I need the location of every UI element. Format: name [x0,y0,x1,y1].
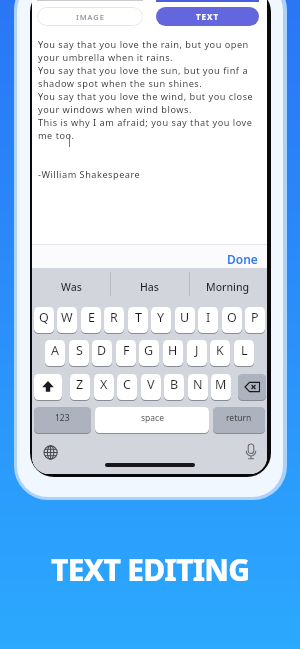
button[interactable]: space [95,407,209,434]
staticText: F [123,342,130,359]
staticText: U [180,309,190,326]
button[interactable]: V [141,374,161,401]
button[interactable]: U [175,307,195,334]
button[interactable]: W [57,307,77,334]
button[interactable]: O [222,307,242,334]
button[interactable]: Morning [189,272,267,302]
button[interactable]: K [210,340,230,367]
button[interactable]: E [81,307,101,334]
staticText: B [170,376,179,393]
button[interactable]: Done [227,251,258,267]
staticText: R [110,309,118,326]
staticText: Z [76,376,84,393]
staticText: Done [227,251,258,267]
button[interactable] [242,443,260,463]
staticText: Morning [206,280,250,294]
button[interactable] [238,374,266,401]
button[interactable]: D [92,340,112,367]
button[interactable]: Z [70,374,90,401]
button[interactable]: Q [34,307,54,334]
staticText: J [195,342,199,359]
button[interactable]: return [213,407,265,434]
staticText: TEXT EDITING [51,549,250,590]
staticText: D [97,342,107,359]
button[interactable]: J [187,340,207,367]
button[interactable]: M [211,374,231,401]
button[interactable]: X [94,374,114,401]
staticText: TEXT [196,11,220,22]
button[interactable]: TEXT [156,7,259,26]
button[interactable]: A [45,340,65,367]
staticText: K [216,342,224,359]
button[interactable]: I [198,307,218,334]
staticText: T [135,309,142,326]
button[interactable]: T [128,307,148,334]
staticText: G [144,342,154,359]
staticText: Was [61,280,82,294]
button[interactable]: IMAGE [37,7,143,26]
staticText: 123 [55,412,70,424]
staticText: IMAGE [76,12,105,22]
button[interactable]: B [164,374,184,401]
button[interactable]: S [69,340,89,367]
staticText: P [251,309,259,326]
staticText: A [51,342,59,359]
button[interactable]: 123 [34,407,91,434]
staticText: Has [140,280,159,294]
staticText: return [226,412,252,424]
staticText: Q [39,309,49,326]
button[interactable] [34,374,62,401]
button[interactable]: Y [151,307,171,334]
staticText: E [88,309,95,326]
staticText: C [123,376,131,393]
staticText: space [141,412,164,424]
staticText: H [168,342,178,359]
staticText: M [215,376,227,393]
button[interactable]: L [234,340,254,367]
staticText: N [193,376,203,393]
staticText: O [227,309,237,326]
staticText: You say that you love the rain, but you … [38,38,266,181]
staticText: I [206,309,211,326]
button[interactable] [40,442,61,463]
button[interactable]: Has [110,272,188,302]
staticText: Y [157,309,165,326]
staticText: X [100,376,108,393]
button[interactable]: R [104,307,124,334]
button[interactable]: C [117,374,137,401]
button[interactable]: Was [32,272,110,302]
button[interactable]: H [163,340,183,367]
button[interactable]: N [188,374,208,401]
staticText: V [147,376,155,393]
staticText: S [76,342,83,359]
staticText: W [61,309,73,326]
button[interactable]: P [245,307,265,334]
button[interactable]: G [139,340,159,367]
button[interactable]: F [116,340,136,367]
staticText: L [241,342,248,359]
